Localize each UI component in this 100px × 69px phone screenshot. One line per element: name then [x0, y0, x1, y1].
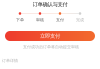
staticText: 订单确认与支付	[32, 1, 67, 8]
staticText: 支付	[56, 17, 64, 22]
staticText: 审核	[36, 17, 44, 22]
button[interactable]: 立即支付	[5, 31, 95, 41]
staticText: 支付成功后订单将自动提交审核	[23, 44, 79, 49]
staticText: 完成	[76, 17, 84, 22]
staticText: 立即支付	[40, 33, 60, 39]
staticText: 下单	[16, 17, 24, 22]
staticText: 订单详情	[2, 58, 18, 63]
